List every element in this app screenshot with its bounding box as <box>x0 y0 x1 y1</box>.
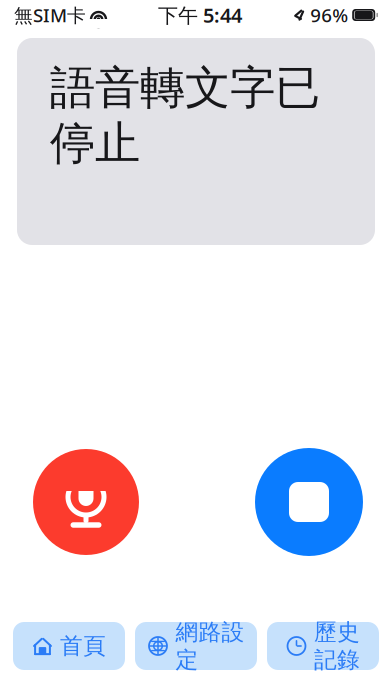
button[interactable]: 歷史記錄 <box>267 622 379 670</box>
button[interactable]: 停止 <box>255 448 363 556</box>
staticText: 下午 5:44 <box>158 2 242 28</box>
staticText: 96% <box>310 3 348 27</box>
staticText: 首頁 <box>60 632 106 660</box>
staticText: 無SIM卡 <box>14 3 86 27</box>
button[interactable]: 開始錄音 <box>33 449 139 555</box>
staticText: 網路設定 <box>175 618 244 674</box>
button[interactable]: 首頁 <box>13 622 125 670</box>
button[interactable]: 網路設定 <box>135 622 257 670</box>
staticText: 語音轉文字已停止 <box>50 60 320 171</box>
staticText: 歷史記錄 <box>314 618 360 674</box>
